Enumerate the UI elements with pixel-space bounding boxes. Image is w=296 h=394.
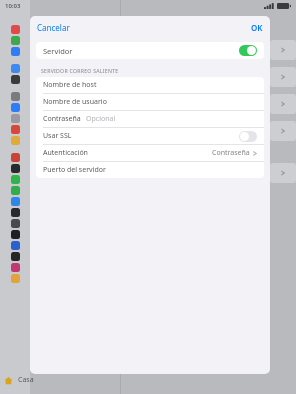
staticText: Servidor — [43, 46, 73, 56]
staticText: Contraseña — [43, 114, 81, 124]
staticText: Opcional — [86, 114, 116, 124]
button[interactable]: Desactivado — [239, 131, 257, 142]
button[interactable]: Nombre de host — [36, 77, 264, 93]
staticText: 10:03 — [5, 2, 21, 10]
staticText: Casa — [18, 375, 34, 385]
staticText: Nombre de usuario — [43, 97, 107, 107]
staticText: Autenticación — [43, 148, 88, 158]
staticText: OK — [251, 22, 263, 33]
button[interactable]: OK — [249, 19, 265, 36]
staticText: Cancelar — [37, 22, 70, 33]
button[interactable]: Usar SSL — [36, 128, 264, 144]
staticText: SERVIDOR CORREO SALIENTE — [41, 67, 119, 74]
staticText: Nombre de host — [43, 80, 97, 90]
staticText: Contraseña — [212, 148, 250, 158]
staticText: Puerto del servidor — [43, 165, 106, 175]
staticText: Usar SSL — [43, 131, 72, 141]
button[interactable]: Activado — [239, 45, 257, 56]
button[interactable]: Autenticación — [36, 145, 264, 161]
button[interactable]: Cancelar — [35, 19, 72, 36]
button[interactable]: Casa — [4, 372, 112, 388]
button[interactable]: Puerto del servidor — [36, 162, 264, 178]
button[interactable]: Nombre de usuario — [36, 94, 264, 110]
button[interactable]: Servidor — [36, 42, 264, 59]
button[interactable]: Contraseña — [36, 111, 264, 127]
